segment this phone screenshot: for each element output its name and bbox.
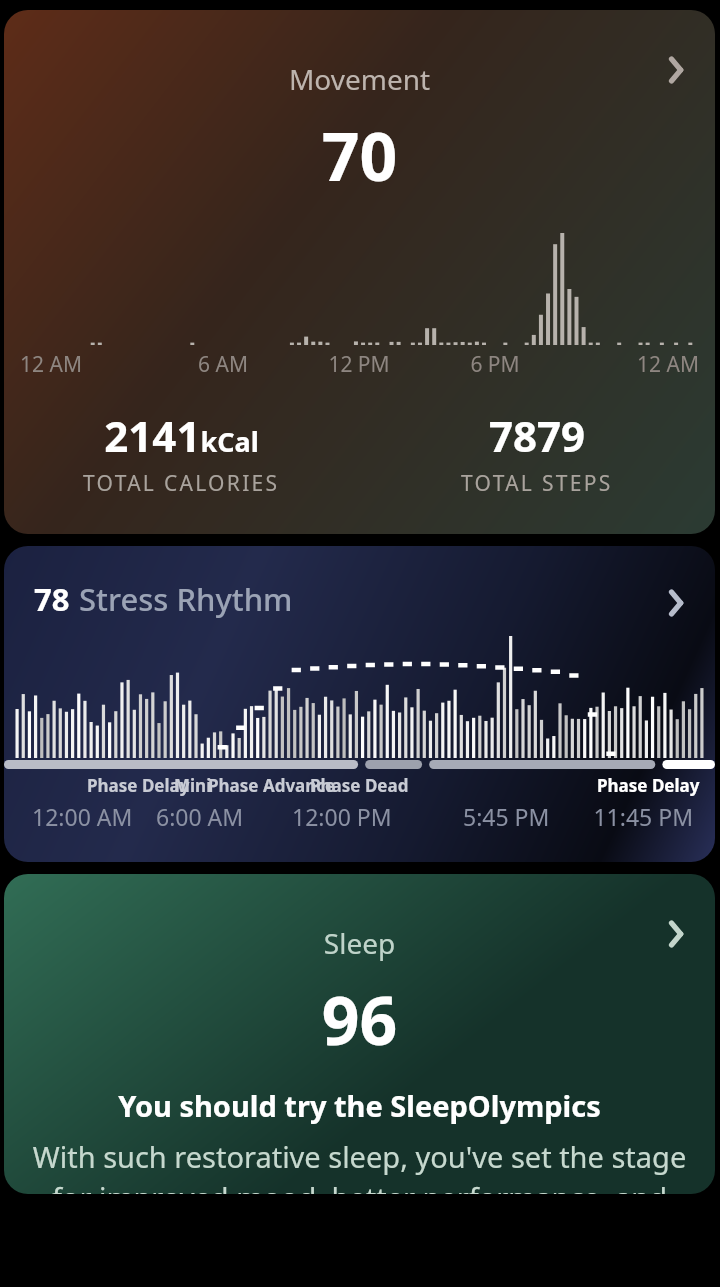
- staticText: Phase Advance: [208, 774, 336, 797]
- staticText: Movement: [4, 60, 715, 98]
- staticText: Mini: [174, 774, 212, 797]
- button[interactable]: Sleep: [4, 874, 715, 1194]
- staticText: Phase Dead: [310, 774, 409, 797]
- staticText: Stress Rhythm: [79, 578, 293, 620]
- staticText: 78: [34, 578, 70, 620]
- staticText: 12 AM: [20, 350, 155, 379]
- staticText: Sleep: [4, 924, 715, 962]
- staticText: TOTAL CALORIES: [83, 469, 280, 498]
- staticText: 6 PM: [427, 350, 563, 379]
- button[interactable]: Open Sleep details: [653, 912, 697, 956]
- staticText: 6:00 AM: [156, 801, 292, 832]
- staticText: 7879: [489, 407, 586, 464]
- staticText: 96: [4, 974, 715, 1064]
- staticText: You should try the SleepOlympics: [4, 1086, 715, 1125]
- staticText: 12:00 PM: [292, 801, 463, 832]
- button[interactable]: 78: [4, 546, 715, 862]
- button[interactable]: Open Movement details: [653, 48, 697, 92]
- staticText: 6 AM: [155, 350, 291, 379]
- button[interactable]: Open Stress Rhythm details: [653, 581, 697, 625]
- staticText: Phase Delay: [597, 774, 700, 797]
- staticText: 12 PM: [291, 350, 427, 379]
- button[interactable]: Movement: [4, 10, 715, 534]
- staticText: 12 AM: [563, 350, 699, 379]
- staticText: 70: [4, 110, 715, 200]
- staticText: Phase Delay: [87, 774, 190, 797]
- staticText: 2141kCal: [104, 407, 259, 464]
- staticText: TOTAL STEPS: [461, 469, 613, 498]
- staticText: With such restorative sleep, you've set …: [18, 1137, 701, 1194]
- staticText: 12:00 AM: [32, 801, 156, 832]
- staticText: 11:45 PM: [575, 801, 693, 832]
- staticText: 5:45 PM: [463, 801, 575, 832]
